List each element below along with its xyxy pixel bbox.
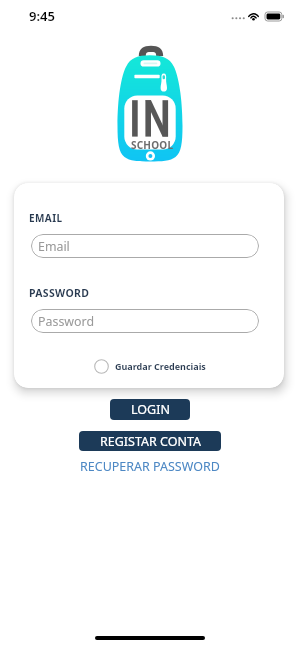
button[interactable]: LOGIN (110, 399, 190, 420)
staticText: Password (38, 313, 95, 330)
staticText: REGISTAR CONTA (100, 433, 201, 450)
staticText: Guardar Credenciais (115, 360, 206, 372)
staticText: PASSWORD (29, 286, 90, 300)
staticText: SCHOOL (131, 138, 174, 152)
staticText: 9:45 (29, 7, 55, 25)
button[interactable]: Password (31, 309, 259, 333)
button[interactable]: Email (31, 234, 259, 258)
staticText: EMAIL (29, 211, 63, 225)
button[interactable]: REGISTAR CONTA (79, 431, 221, 451)
staticText: LOGIN (131, 401, 170, 418)
button[interactable]: RECUPERAR PASSWORD (0, 457, 300, 475)
staticText: RECUPERAR PASSWORD (80, 458, 220, 475)
staticText: Email (38, 238, 70, 255)
button[interactable]: Guardar Credenciais (94, 357, 206, 375)
